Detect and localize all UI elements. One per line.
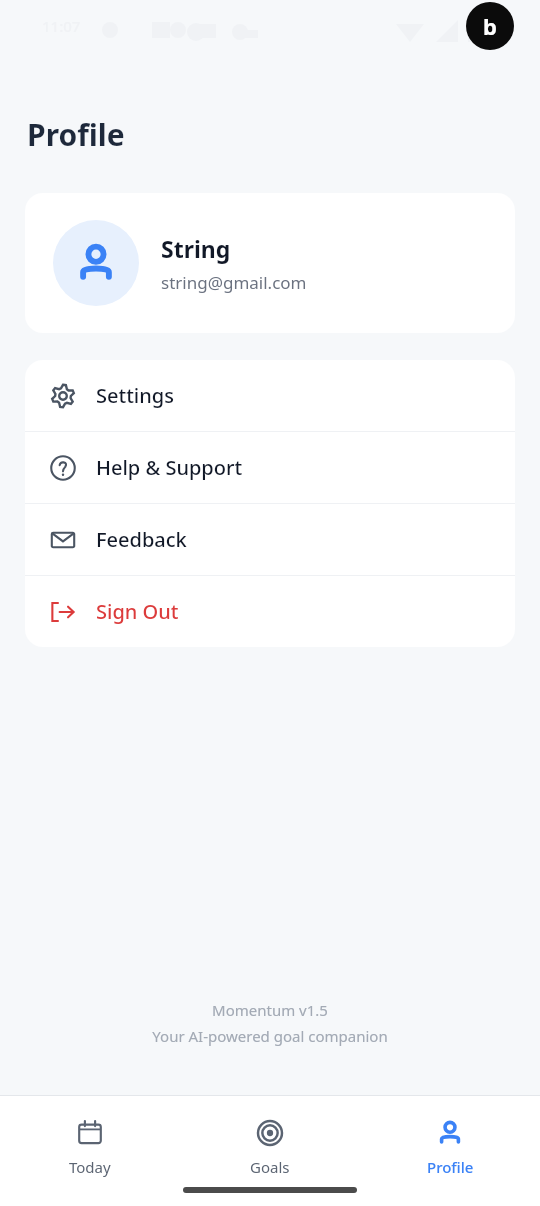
button[interactable]: Today: [0, 1114, 180, 1181]
button[interactable]: Feedback: [25, 504, 515, 575]
staticText: String: [161, 233, 231, 264]
staticText: Goals: [250, 1157, 290, 1177]
staticText: Momentum v1.5: [212, 1000, 328, 1020]
staticText: Feedback: [96, 526, 187, 553]
staticText: Help & Support: [96, 454, 243, 481]
staticText: Your AI-powered goal companion: [152, 1026, 388, 1046]
button[interactable]: Help & Support: [25, 432, 515, 503]
staticText: Profile: [27, 114, 125, 155]
staticText: Today: [69, 1157, 111, 1177]
staticText: Settings: [96, 382, 174, 409]
staticText: b: [483, 11, 497, 41]
button[interactable]: String: [25, 193, 515, 333]
staticText: string@gmail.com: [161, 271, 307, 294]
button[interactable]: Profile: [360, 1114, 540, 1181]
staticText: Sign Out: [96, 598, 179, 625]
button[interactable]: Goals: [180, 1114, 360, 1181]
staticText: Profile: [427, 1157, 474, 1177]
button[interactable]: Settings: [25, 360, 515, 431]
button[interactable]: Sign Out: [25, 576, 515, 647]
